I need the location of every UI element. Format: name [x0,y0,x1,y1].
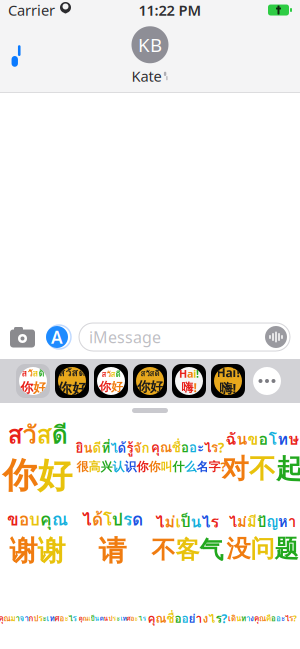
button[interactable] [225,580,300,649]
staticText: 对 [222,452,249,485]
button[interactable]: 谢谢 [0,498,75,576]
button[interactable]: 你好 [0,417,75,495]
staticText: ! [232,380,236,397]
staticText: ดี [92,438,101,458]
staticText: ม่ [237,510,247,533]
staticText: ร [215,609,221,628]
staticText: 11:22 PM [138,0,201,20]
staticText: อ [174,609,181,628]
staticText: ข [247,427,258,451]
button[interactable]: 对不起 [225,417,300,495]
staticText: ศ [126,613,130,624]
staticText: 么 [184,459,196,474]
button[interactable]: Kate, contact details [131,26,168,86]
staticText: ณ [155,609,166,628]
staticText: ดี [78,364,85,381]
staticText: คุ [0,612,3,625]
staticText: ร [211,437,218,458]
staticText: ร [38,612,42,625]
staticText: ? [220,459,226,475]
button[interactable]: 请 [75,498,150,576]
staticText: ค [99,613,103,624]
staticText: Carrier [8,0,55,20]
staticText: คุ [78,613,82,624]
button[interactable] [0,580,75,649]
button[interactable]: 不客气 [150,498,225,576]
button[interactable]: More apps [249,363,285,399]
staticText: 谢 [37,534,65,568]
button[interactable]: 没问题 [225,498,300,576]
staticText: ? [221,610,227,626]
staticText: อ [59,612,64,625]
staticText: ร [142,613,146,624]
staticText: 什 [172,459,184,474]
staticText: ส [58,364,65,381]
staticText: อ [130,613,134,624]
staticText: ะ [197,437,204,458]
staticText: 好 [72,380,87,398]
staticText: า [24,612,28,625]
staticText: คุ [147,609,155,628]
staticText: วั [27,366,32,381]
staticText: 高 [88,459,100,474]
button[interactable]: Sticker pack [93,363,129,399]
staticText: คื [266,612,271,625]
staticText: รู้ [126,438,133,458]
staticText: ที่ [101,438,110,458]
button[interactable]: 很高兴认识你 [75,417,150,495]
button[interactable]: App Store [45,325,69,349]
staticText: 你 [57,380,72,398]
staticText: A [51,325,63,348]
staticText: ณ [3,612,10,625]
staticText: ชื่ [166,609,174,628]
staticText: a [225,365,232,381]
staticText: ยิ [75,438,83,458]
staticText: ก [141,438,149,458]
staticText: ณ [52,506,68,533]
button[interactable]: 你叫什么名字? [150,417,225,495]
button[interactable]: iMessage text field [79,323,290,351]
button[interactable]: Back [0,36,34,76]
staticText: มี [247,510,257,533]
staticText: วั [145,367,149,379]
staticText: ไ [204,437,211,458]
staticText: ชื่ [172,437,181,458]
staticText: H [179,366,187,381]
staticText: 叫 [160,459,172,474]
staticText: 认 [112,459,124,474]
staticText: ? [293,613,297,624]
staticText: H [216,365,225,381]
staticText: ษ [288,427,299,451]
staticText: ไ [138,613,142,624]
staticText: ไ [82,506,92,533]
staticText: วั [106,368,110,380]
staticText: ส [101,368,106,380]
button[interactable]: Sticker pack [210,363,246,399]
button[interactable]: Sticker pack [15,363,51,399]
button[interactable]: Sticker pack [54,363,90,399]
staticText: อ [258,427,268,451]
button[interactable]: Sticker pack [171,363,207,399]
staticText: ดี [38,366,44,381]
staticText: 你 [148,459,160,474]
staticText: า [246,612,250,625]
button[interactable]: Sticker pack [132,363,168,399]
staticText: Kate [132,66,162,86]
staticText: ! [236,365,239,381]
staticText: คุ [151,437,160,458]
staticText: ป [112,506,123,533]
staticText: ส [36,415,51,454]
staticText: ร [289,612,293,625]
staticText: ด้ [92,506,103,533]
button[interactable]: Camera [10,326,35,347]
button[interactable] [75,580,150,649]
staticText: 你 [20,379,33,396]
staticText: 你 [136,459,148,474]
staticText: ส [110,368,115,380]
staticText: 不 [249,452,276,485]
staticText: ดี [51,415,67,454]
button[interactable] [150,580,225,649]
staticText: ง [202,609,208,628]
staticText: อ [189,437,197,458]
staticText: เ [88,613,90,624]
